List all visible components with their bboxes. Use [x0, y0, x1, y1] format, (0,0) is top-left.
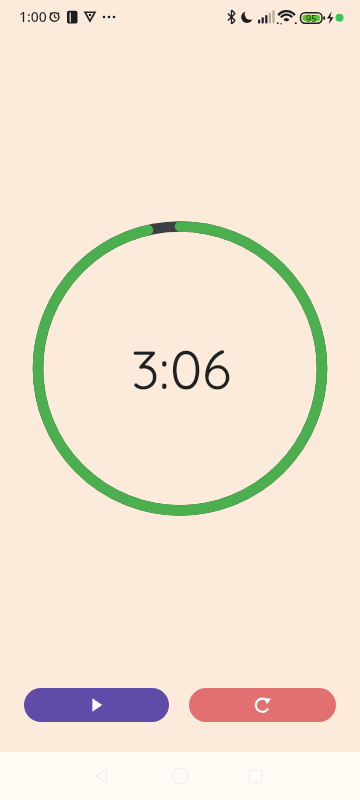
button[interactable] — [88, 762, 116, 790]
staticText: 1:00 — [19, 7, 47, 26]
button[interactable] — [24, 688, 169, 722]
button[interactable] — [189, 688, 336, 722]
staticText: 95 — [306, 12, 317, 24]
button[interactable] — [241, 762, 269, 790]
button[interactable] — [166, 762, 194, 790]
